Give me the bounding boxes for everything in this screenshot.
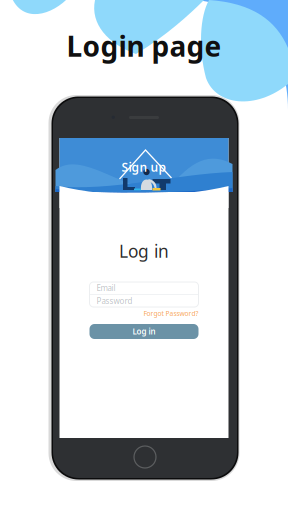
- staticText: Sign up: [121, 159, 166, 175]
- staticText: Email: [96, 283, 115, 293]
- button[interactable]: Log in: [89, 324, 198, 339]
- button[interactable]: Forgot Password?: [89, 309, 198, 318]
- staticText: Forgot Password?: [143, 309, 198, 318]
- staticText: Log in: [132, 326, 155, 337]
- staticText: Password: [96, 296, 132, 306]
- staticText: Log in: [119, 239, 169, 262]
- staticText: Login page: [66, 27, 221, 65]
